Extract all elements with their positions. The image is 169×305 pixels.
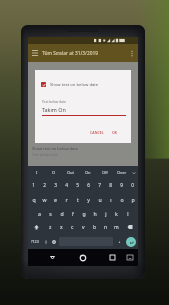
button[interactable]: Back <box>44 249 61 266</box>
staticText: Tüm Sıralar at 31/3/2019 <box>42 50 98 57</box>
button[interactable]: t <box>72 192 83 206</box>
button[interactable]: Show text on below date <box>35 70 131 99</box>
button[interactable]: p <box>127 192 138 206</box>
button[interactable]: a <box>33 206 45 220</box>
staticText: e <box>54 196 57 203</box>
button[interactable]: q <box>28 192 39 206</box>
button[interactable]: k <box>111 206 122 220</box>
button[interactable]: Recent apps <box>104 249 121 266</box>
button[interactable]: 5 <box>72 179 83 192</box>
staticText: x <box>60 224 63 231</box>
button[interactable]: Change language <box>50 234 58 249</box>
staticText: 6 <box>87 182 90 189</box>
button[interactable]: Shift <box>28 220 45 234</box>
staticText: w <box>42 196 47 203</box>
staticText: O <box>52 170 56 175</box>
button[interactable]: d <box>56 206 67 220</box>
button[interactable]: 6 <box>83 179 94 192</box>
button[interactable]: 9 <box>116 179 127 192</box>
button[interactable]: b <box>89 220 100 234</box>
staticText: n <box>104 224 108 231</box>
staticText: Out <box>67 170 75 175</box>
button[interactable]: O <box>45 166 62 179</box>
button[interactable]: More options <box>126 44 138 62</box>
button[interactable]: 3 <box>50 179 61 192</box>
button[interactable]: Off <box>96 166 113 179</box>
button[interactable]: Backspace <box>122 220 138 234</box>
button[interactable]: ?123 <box>28 234 41 249</box>
button[interactable]: Over <box>113 166 130 179</box>
button[interactable]: Switch keyboard <box>123 249 137 266</box>
button[interactable]: I <box>28 166 45 179</box>
staticText: 4 <box>65 182 68 189</box>
staticText: 2 <box>43 182 46 189</box>
button[interactable]: Home <box>74 249 91 266</box>
button[interactable]: Out <box>62 166 79 179</box>
staticText: Takım On <box>42 106 66 113</box>
button[interactable]: j <box>100 206 111 220</box>
staticText: a <box>38 210 41 217</box>
staticText: CANCEL <box>90 130 104 135</box>
staticText: On <box>85 170 91 175</box>
staticText: Over <box>117 170 127 175</box>
staticText: 7 <box>98 182 101 189</box>
staticText: l <box>127 210 129 217</box>
button[interactable]: 4 <box>61 179 72 192</box>
button[interactable]: m <box>111 220 122 234</box>
button[interactable]: f <box>67 206 78 220</box>
staticText: p <box>131 196 135 203</box>
button[interactable]: o <box>116 192 127 206</box>
button[interactable]: e <box>50 192 61 206</box>
staticText: ı <box>110 196 112 203</box>
button[interactable] <box>114 234 124 249</box>
staticText: q <box>32 196 36 203</box>
staticText: b <box>93 224 97 231</box>
button[interactable]: y <box>83 192 94 206</box>
button[interactable]: 2 <box>39 179 50 192</box>
staticText: I <box>36 170 38 175</box>
button[interactable]: h <box>89 206 100 220</box>
staticText: 1 <box>32 182 35 189</box>
button[interactable]: s <box>45 206 56 220</box>
button[interactable]: On <box>79 166 96 179</box>
staticText: c <box>71 224 74 231</box>
button[interactable]: 1 <box>28 179 39 192</box>
button[interactable]: v <box>78 220 89 234</box>
staticText: 0 <box>131 182 134 189</box>
staticText: m <box>114 224 119 231</box>
button[interactable]: x <box>56 220 67 234</box>
button[interactable]: g <box>78 206 89 220</box>
button[interactable]: CANCEL <box>88 127 106 138</box>
button[interactable]: l <box>122 206 133 220</box>
staticText: d <box>60 210 64 217</box>
button[interactable]: More suggestions <box>130 166 138 179</box>
staticText: 8 <box>109 182 112 189</box>
button[interactable]: OK <box>110 127 120 138</box>
button[interactable]: u <box>94 192 105 206</box>
staticText: g <box>82 210 86 217</box>
staticText: o <box>120 196 124 203</box>
button[interactable]: Navigation menu <box>28 44 42 62</box>
button[interactable]: w <box>39 192 50 206</box>
staticText: Show text on below date <box>50 82 99 88</box>
staticText: s <box>49 210 52 217</box>
button[interactable]: z <box>45 220 56 234</box>
staticText: ?123 <box>31 239 39 244</box>
button[interactable]: r <box>61 192 72 206</box>
button[interactable]: n <box>100 220 111 234</box>
button[interactable]: c <box>67 220 78 234</box>
button[interactable]: Comma <box>41 234 50 249</box>
staticText: Text below date <box>42 99 67 103</box>
button[interactable]: Enter <box>126 237 136 247</box>
staticText: 9 <box>120 182 123 189</box>
staticText: y <box>87 196 90 203</box>
staticText: Show text on below date <box>32 146 79 151</box>
button[interactable]: ı <box>105 192 116 206</box>
staticText: Off <box>102 170 108 175</box>
staticText: h <box>93 210 97 217</box>
button[interactable]: 0 <box>127 179 138 192</box>
button[interactable]: 7 <box>94 179 105 192</box>
staticText: j <box>105 210 107 217</box>
button[interactable]: 8 <box>105 179 116 192</box>
